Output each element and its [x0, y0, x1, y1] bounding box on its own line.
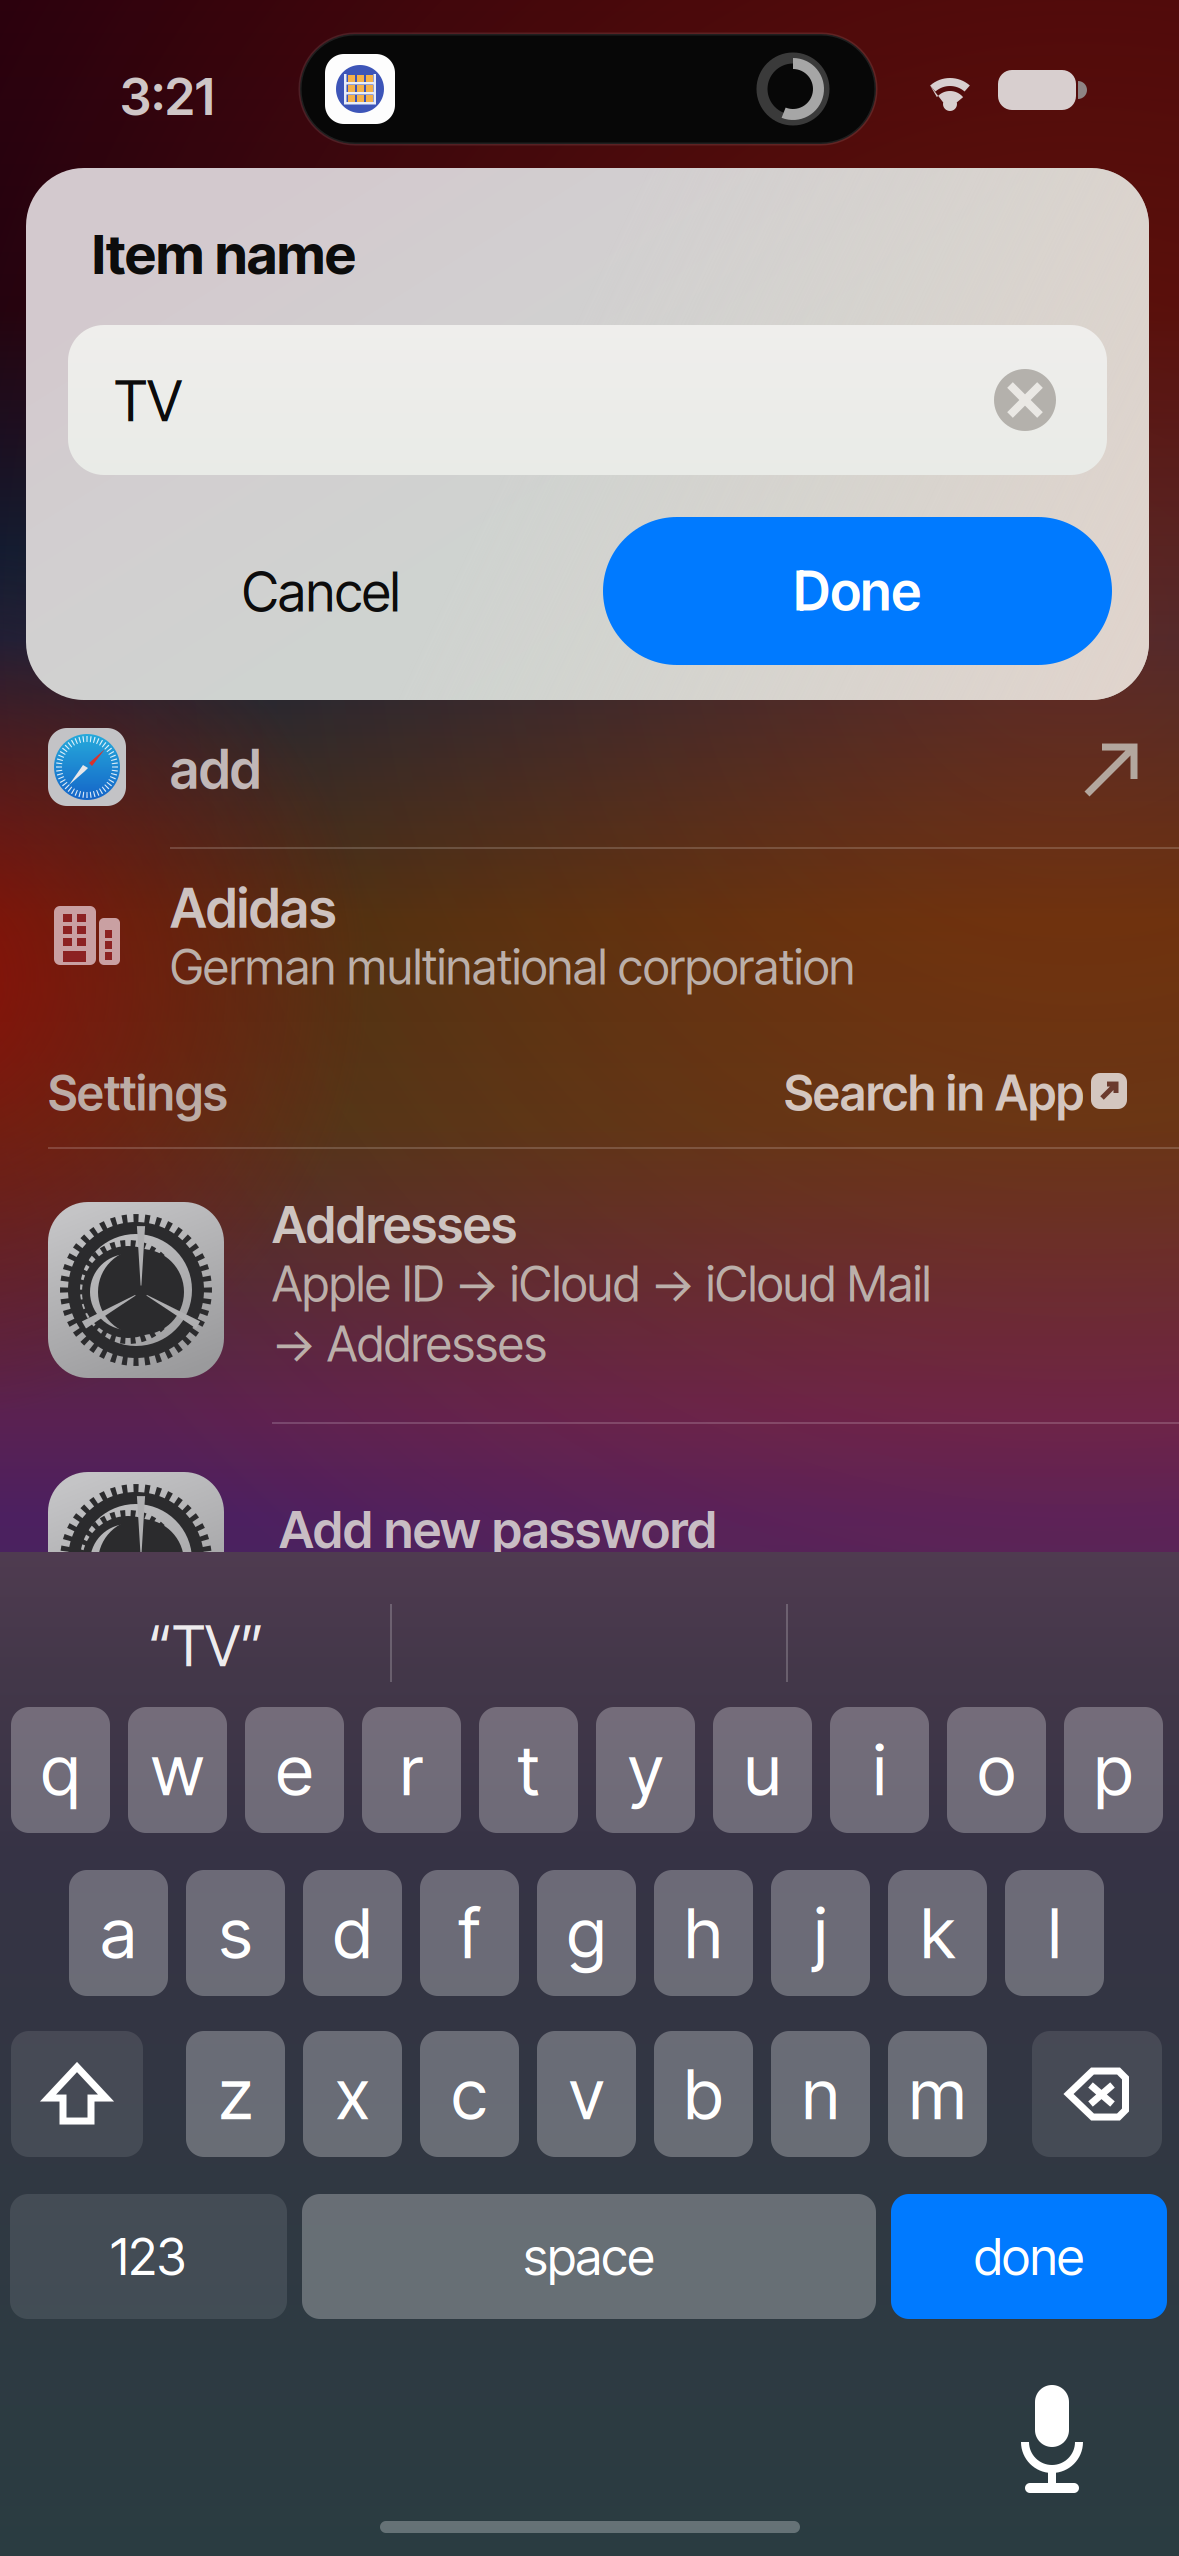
staticText: f — [458, 1891, 480, 1975]
staticText: a — [100, 1891, 136, 1975]
staticText: Addresses — [272, 1194, 517, 1255]
button[interactable]: Adidas — [0, 850, 1179, 1055]
staticText: k — [920, 1891, 954, 1975]
button[interactable]: r — [362, 1707, 461, 1833]
staticText: d — [333, 1891, 372, 1975]
staticText: g — [567, 1891, 606, 1975]
staticText: y — [628, 1728, 663, 1812]
button[interactable]: b — [654, 2031, 753, 2157]
staticText: German multinational corporation — [170, 938, 855, 996]
staticText: u — [744, 1728, 781, 1812]
staticText: TV — [114, 367, 182, 435]
button[interactable]: u — [713, 1707, 812, 1833]
staticText: q — [41, 1728, 80, 1812]
button[interactable]: e — [245, 1707, 344, 1833]
button[interactable]: w — [128, 1707, 227, 1833]
staticText: o — [977, 1728, 1015, 1812]
staticText: p — [1094, 1728, 1133, 1812]
button[interactable]: c — [420, 2031, 519, 2157]
button[interactable]: done — [891, 2194, 1167, 2319]
button[interactable]: Dictation — [1006, 2385, 1098, 2495]
staticText: 123 — [110, 2226, 186, 2287]
staticText: s — [219, 1891, 252, 1975]
staticText: j — [814, 1891, 827, 1975]
staticText: w — [151, 1728, 204, 1812]
button[interactable]: space — [302, 2194, 876, 2319]
button[interactable]: Search in App — [784, 1064, 1128, 1122]
button[interactable]: x — [303, 2031, 402, 2157]
button[interactable]: d — [303, 1870, 402, 1996]
staticText: done — [974, 2226, 1084, 2287]
button[interactable]: Shift — [11, 2031, 143, 2157]
staticText: x — [335, 2052, 369, 2136]
button[interactable]: l — [1005, 1870, 1104, 1996]
staticText: space — [523, 2226, 654, 2287]
staticText: Apple ID → iCloud → iCloud Mail — [272, 1255, 931, 1313]
button[interactable]: q — [11, 1707, 110, 1833]
button[interactable]: f — [420, 1870, 519, 1996]
staticText: h — [684, 1891, 722, 1975]
button[interactable]: g — [537, 1870, 636, 1996]
button[interactable]: Delete — [1032, 2031, 1162, 2157]
staticText: l — [1048, 1891, 1061, 1975]
button[interactable]: Done — [603, 517, 1112, 665]
staticText: m — [909, 2052, 966, 2136]
button[interactable]: m — [888, 2031, 987, 2157]
button[interactable]: Clear text — [994, 369, 1056, 431]
staticText: e — [276, 1728, 313, 1812]
staticText: Search in App — [784, 1064, 1084, 1122]
button[interactable]: add — [0, 700, 1179, 842]
button[interactable]: j — [771, 1870, 870, 1996]
staticText: → Addresses — [272, 1315, 547, 1373]
button[interactable]: o — [947, 1707, 1046, 1833]
button[interactable]: y — [596, 1707, 695, 1833]
button[interactable]: z — [186, 2031, 285, 2157]
button[interactable]: Cancel — [111, 518, 531, 666]
button[interactable]: k — [888, 1870, 987, 1996]
staticText: Done — [793, 559, 921, 623]
staticText: r — [400, 1728, 423, 1812]
staticText: Item name — [92, 221, 356, 287]
staticText: t — [517, 1728, 539, 1812]
staticText: Settings — [48, 1064, 228, 1122]
button[interactable]: Add new password — [0, 1442, 1179, 1562]
staticText: Adidas — [170, 876, 336, 940]
button[interactable]: Addresses — [0, 1162, 1179, 1430]
button[interactable]: n — [771, 2031, 870, 2157]
staticText: Cancel — [242, 560, 400, 624]
staticText: “TV” — [148, 1612, 264, 1680]
staticText: z — [218, 2052, 252, 2136]
staticText: Add new password — [279, 1499, 717, 1560]
staticText: v — [569, 2052, 604, 2136]
button[interactable]: p — [1064, 1707, 1163, 1833]
button[interactable]: v — [537, 2031, 636, 2157]
button[interactable]: 123 — [10, 2194, 287, 2319]
staticText: add — [170, 737, 261, 801]
staticText: 3:21 — [120, 66, 214, 127]
button[interactable]: i — [830, 1707, 929, 1833]
staticText: n — [802, 2052, 839, 2136]
staticText: c — [451, 2052, 487, 2136]
button[interactable]: t — [479, 1707, 578, 1833]
button[interactable]: s — [186, 1870, 285, 1996]
button[interactable]: h — [654, 1870, 753, 1996]
staticText: i — [873, 1728, 886, 1812]
button[interactable]: a — [69, 1870, 168, 1996]
staticText: b — [684, 2052, 723, 2136]
